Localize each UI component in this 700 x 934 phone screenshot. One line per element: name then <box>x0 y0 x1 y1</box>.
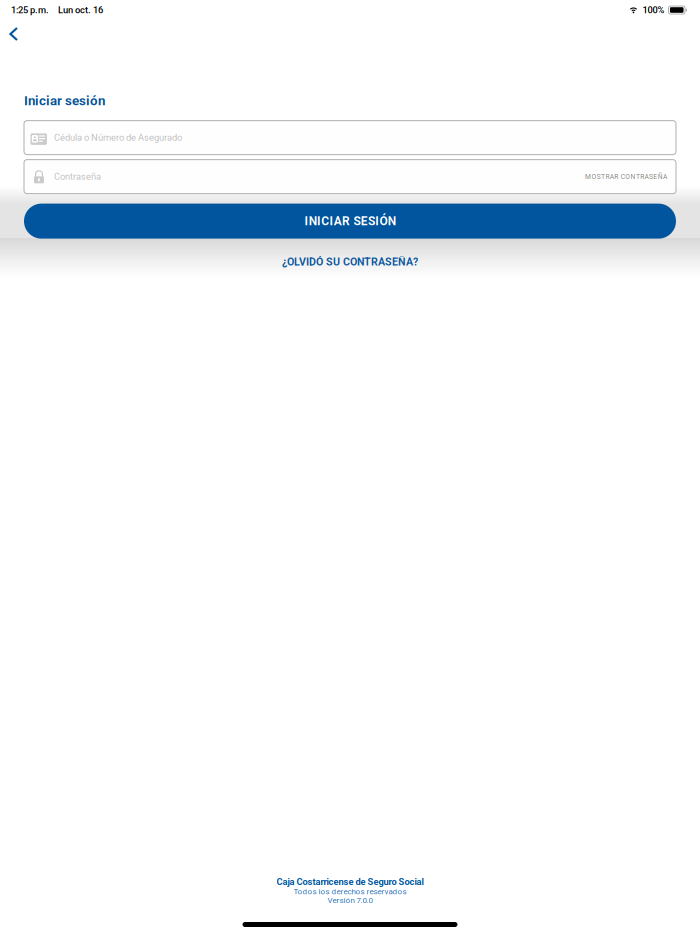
staticText: 100% <box>642 4 664 15</box>
staticText: MOSTRAR CONTRASEÑA <box>585 173 667 180</box>
staticText: Versión 7.0.0 <box>327 896 372 905</box>
staticText: Iniciar sesión <box>24 93 105 109</box>
staticText: Todos los derechos reservados <box>293 887 406 896</box>
button[interactable]: ¿OLVIDÓ SU CONTRASEÑA? <box>24 249 676 275</box>
staticText: Lun oct. 16 <box>58 4 103 15</box>
staticText: Contraseña <box>54 171 101 182</box>
button[interactable]: MOSTRAR CONTRASEÑA <box>573 164 676 189</box>
button[interactable]: INICIAR SESIÓN <box>24 204 676 239</box>
staticText: 1:25 p.m. <box>11 4 49 15</box>
staticText: Cédula o Número de Asegurado <box>54 132 182 143</box>
staticText: ¿OLVIDÓ SU CONTRASEÑA? <box>282 256 418 268</box>
staticText: INICIAR SESIÓN <box>304 214 396 228</box>
button[interactable]: Back <box>0 21 30 47</box>
staticText: Caja Costarricense de Seguro Social <box>276 876 423 887</box>
